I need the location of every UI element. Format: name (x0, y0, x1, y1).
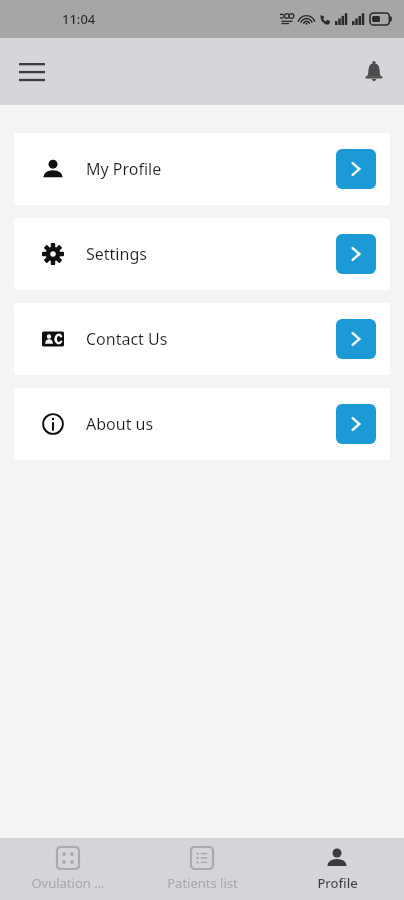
staticText: About us (86, 413, 154, 435)
staticText: Patients list (167, 874, 238, 892)
button[interactable]: Open navigation menu (10, 50, 54, 94)
button[interactable]: My Profile (14, 133, 390, 205)
button[interactable]: Open Contact Us (336, 319, 376, 359)
button[interactable]: Open About us (336, 404, 376, 444)
button[interactable]: Profile (270, 838, 404, 900)
button[interactable]: Settings (14, 218, 390, 290)
button[interactable]: About us (14, 388, 390, 460)
staticText: Settings (86, 243, 147, 265)
staticText: Contact Us (86, 328, 168, 350)
staticText: My Profile (86, 158, 162, 180)
button[interactable]: Open My Profile (336, 149, 376, 189)
button[interactable]: Contact Us (14, 303, 390, 375)
button[interactable]: Notifications (352, 50, 396, 94)
button[interactable]: Patients list (135, 838, 269, 900)
staticText: Ovulation ... (31, 874, 105, 892)
button[interactable]: Open Settings (336, 234, 376, 274)
staticText: Profile (317, 874, 358, 892)
button[interactable]: Ovulation ... (1, 838, 135, 900)
staticText: 11:04 (62, 10, 96, 28)
